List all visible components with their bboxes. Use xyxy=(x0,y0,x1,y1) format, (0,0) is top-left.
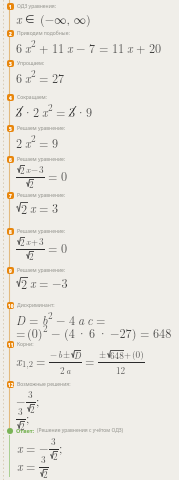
staticText: = xyxy=(140,324,150,341)
staticText: 7 xyxy=(89,39,96,56)
staticText: x xyxy=(17,457,23,474)
staticText: x xyxy=(42,103,48,120)
staticText: ± xyxy=(63,348,71,361)
staticText: Решаем уравнение: xyxy=(17,156,66,163)
staticText: 3 xyxy=(18,405,23,418)
staticText: 2 xyxy=(60,364,65,377)
staticText: = xyxy=(48,167,58,184)
button[interactable]: 5 xyxy=(0,125,179,151)
staticText: + xyxy=(31,235,39,248)
staticText: 2 xyxy=(9,31,12,37)
button[interactable]: 6 xyxy=(0,156,179,187)
staticText: 3 xyxy=(51,435,56,448)
button[interactable]: 2 xyxy=(0,30,179,56)
staticText: = xyxy=(16,324,26,341)
staticText: ; xyxy=(59,439,63,456)
button[interactable]: 8 xyxy=(0,228,179,259)
staticText: (0) xyxy=(27,324,43,341)
staticText: 2 xyxy=(20,164,25,177)
staticText: Решаем уравнение: xyxy=(17,228,66,235)
staticText: · xyxy=(23,103,33,120)
staticText: Решаем уравнение: xyxy=(17,125,66,132)
staticText: · xyxy=(76,103,86,120)
staticText: ; xyxy=(26,409,30,426)
staticText: −27) xyxy=(110,324,137,341)
staticText: = xyxy=(56,103,66,120)
staticText: 3 xyxy=(69,103,76,120)
staticText: = xyxy=(85,352,95,369)
staticText: = xyxy=(96,311,106,328)
staticText: + xyxy=(136,39,146,56)
staticText: Возможные решения: xyxy=(17,381,71,388)
staticText: 648 xyxy=(153,324,172,341)
button[interactable]: 9 xyxy=(0,267,179,291)
staticText: ОДЗ уравнения: xyxy=(17,3,56,10)
staticText: b xyxy=(42,311,48,328)
staticText: 2 xyxy=(31,67,36,80)
button[interactable]: 11 xyxy=(0,341,179,377)
staticText: 5 xyxy=(9,126,12,132)
staticText: = xyxy=(39,134,49,151)
staticText: 6 xyxy=(89,324,96,341)
staticText: 20 xyxy=(149,39,162,56)
staticText: 2 xyxy=(53,450,58,463)
staticText: 0 xyxy=(61,167,68,184)
staticText: 3 xyxy=(9,61,12,67)
staticText: 3 xyxy=(39,163,44,176)
staticText: x xyxy=(16,352,22,369)
staticText: ; xyxy=(36,392,40,409)
staticText: (4 xyxy=(64,324,75,341)
staticText: 2 xyxy=(21,200,28,217)
button[interactable]: 10 xyxy=(0,302,179,341)
staticText: 3 xyxy=(16,103,23,120)
staticText: − xyxy=(39,439,49,456)
staticText: x xyxy=(67,39,73,56)
staticText: c xyxy=(87,311,93,328)
staticText: 8 xyxy=(9,229,12,235)
staticText: Упрощаем: xyxy=(17,60,45,67)
staticText: 7 xyxy=(9,193,12,199)
button[interactable]: 3 xyxy=(0,60,179,86)
button[interactable]: 4 xyxy=(0,94,179,120)
staticText: 2 xyxy=(31,132,36,145)
staticText: x xyxy=(17,439,23,456)
staticText: − xyxy=(16,392,26,409)
staticText: b xyxy=(58,348,63,361)
staticText: − xyxy=(76,39,86,56)
staticText: · xyxy=(98,324,108,341)
staticText: 2 xyxy=(43,468,48,480)
staticText: (0) xyxy=(132,348,144,361)
staticText: 11 xyxy=(112,39,125,56)
staticText: x xyxy=(26,235,31,248)
staticText: − xyxy=(56,311,66,328)
staticText: 9 xyxy=(9,268,12,274)
staticText: (−∞, ∞) xyxy=(40,10,91,27)
button[interactable]: Ответ: xyxy=(0,427,179,477)
staticText: 2 xyxy=(43,322,48,335)
staticText: D xyxy=(74,349,81,362)
button[interactable]: 12 xyxy=(0,381,179,429)
button[interactable]: 7 xyxy=(0,192,179,216)
staticText: − xyxy=(31,163,39,176)
staticText: 1,2 xyxy=(22,357,33,369)
staticText: ∈ xyxy=(25,13,35,26)
staticText: 10 xyxy=(8,303,14,309)
staticText: 12 xyxy=(8,382,14,388)
staticText: x xyxy=(30,199,36,216)
staticText: 3 xyxy=(39,235,44,248)
staticText: 2 xyxy=(29,178,34,191)
staticText: Сокращаем: xyxy=(17,94,47,101)
staticText: x xyxy=(25,39,31,56)
staticText: 11 xyxy=(52,39,65,56)
staticText: 0 xyxy=(61,239,68,256)
staticText: = xyxy=(48,239,58,256)
button[interactable]: 1 xyxy=(0,3,179,27)
staticText: 6 xyxy=(16,69,23,86)
staticText: x xyxy=(25,69,31,86)
staticText: = xyxy=(99,39,109,56)
staticText: Решаем уравнение: xyxy=(17,267,66,274)
staticText: 2 xyxy=(29,250,34,263)
staticText: x xyxy=(26,163,31,176)
staticText: −3 xyxy=(52,274,68,291)
staticText: 4 xyxy=(69,311,76,328)
